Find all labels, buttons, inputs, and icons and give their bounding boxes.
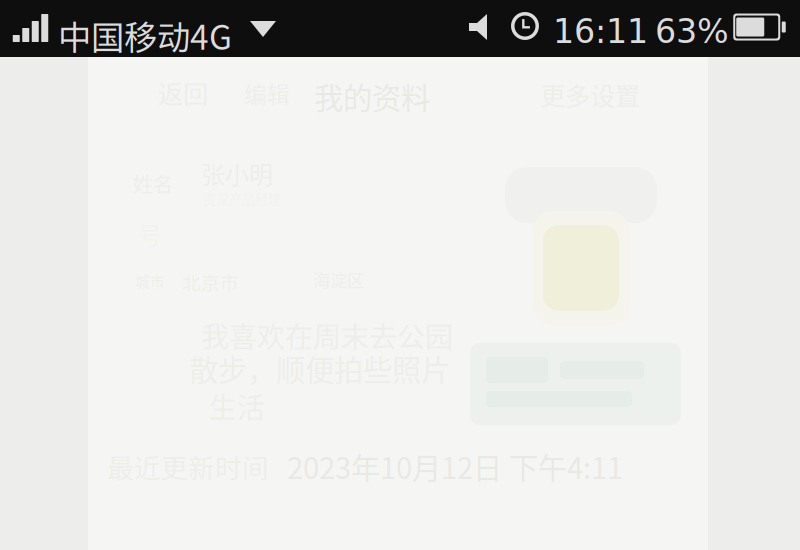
- staticText: 63%: [655, 12, 729, 51]
- staticText: 我喜欢在周末去公园: [201, 315, 453, 355]
- staticText: 海淀区: [313, 267, 364, 292]
- staticText: 我的资料: [314, 75, 430, 117]
- staticText: 最近更新时间: [107, 447, 269, 486]
- staticText: 更多设置: [540, 76, 640, 113]
- staticText: 返回: [158, 74, 208, 111]
- staticText: 2023年10月12日 下午4:11: [287, 445, 623, 487]
- button[interactable]: 头像: [505, 167, 657, 325]
- staticText: 张小明: [201, 156, 273, 191]
- staticText: 中国移动4G: [58, 11, 232, 59]
- button[interactable]: 个人标签: [470, 343, 681, 425]
- staticText: 编辑: [244, 77, 290, 110]
- staticText: 城市: [135, 270, 165, 291]
- staticText: 散步，顺便拍些照片: [189, 347, 450, 389]
- staticText: 姓名: [133, 169, 173, 198]
- staticText: 16:11: [553, 12, 648, 51]
